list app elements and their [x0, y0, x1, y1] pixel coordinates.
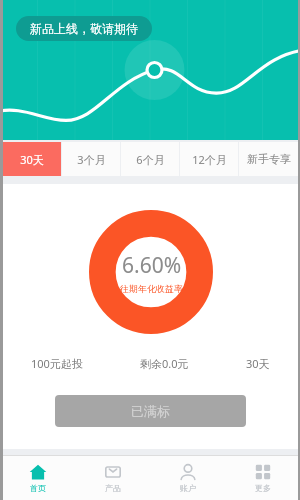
staticText: 新手专享: [247, 152, 291, 166]
staticText: 账户: [180, 483, 196, 493]
button[interactable]: 账户: [150, 456, 225, 500]
button[interactable]: 新品上线，敬请期待: [16, 16, 152, 41]
staticText: 首页: [30, 483, 46, 493]
staticText: 30天: [246, 356, 270, 371]
button[interactable]: 已满标: [55, 395, 246, 427]
staticText: 3个月: [77, 152, 106, 167]
button[interactable]: 产品: [75, 456, 150, 500]
staticText: 6个月: [136, 152, 165, 167]
staticText: 30天: [20, 152, 44, 167]
staticText: 已满标: [131, 403, 170, 419]
staticText: 往期年化收益率: [120, 283, 183, 294]
staticText: 剩余0.0元: [140, 356, 189, 371]
button[interactable]: 3个月: [62, 142, 120, 176]
button[interactable]: 首页: [0, 456, 75, 500]
staticText: 更多: [255, 483, 271, 493]
button[interactable]: 30天: [3, 142, 61, 176]
button[interactable]: 新手专享: [239, 142, 298, 176]
staticText: 6.60%: [122, 251, 182, 280]
staticText: 新品上线，敬请期待: [30, 21, 138, 36]
staticText: 12个月: [192, 152, 227, 167]
button[interactable]: 6个月: [121, 142, 179, 176]
button[interactable]: 12个月: [180, 142, 238, 176]
staticText: 产品: [105, 483, 121, 493]
staticText: 100元起投: [31, 356, 83, 371]
button[interactable]: 更多: [225, 456, 300, 500]
